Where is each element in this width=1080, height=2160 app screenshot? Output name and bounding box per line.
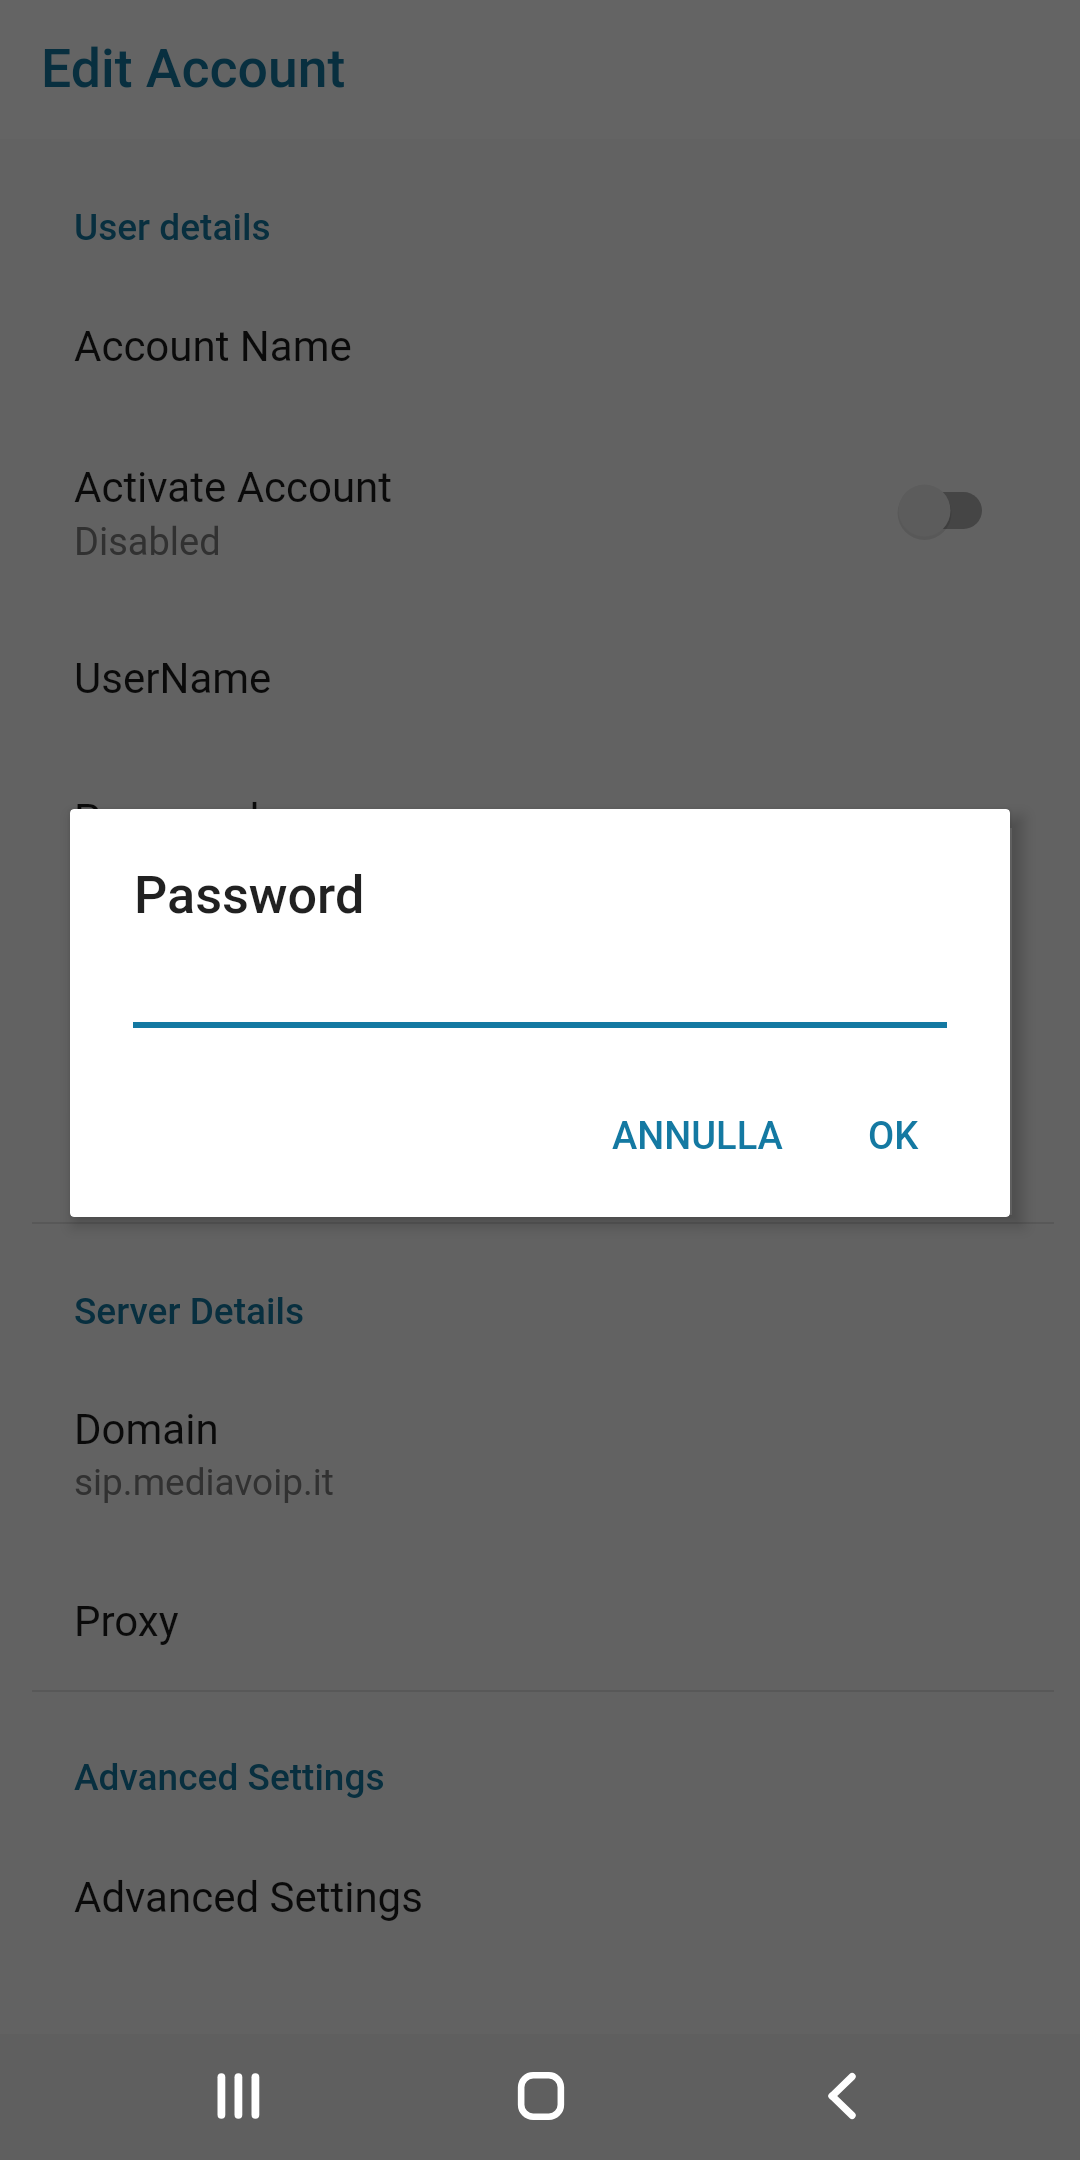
button[interactable]: Activate Account bbox=[0, 440, 1080, 610]
button[interactable]: Back bbox=[763, 2028, 923, 2160]
button[interactable]: Recent apps bbox=[158, 2028, 318, 2160]
staticText: sip.mediavoip.it bbox=[74, 1461, 334, 1504]
staticText: Password bbox=[74, 795, 260, 844]
staticText: Disabled bbox=[74, 520, 221, 565]
staticText: Domain bbox=[74, 1405, 219, 1454]
staticText: ANNULLA bbox=[612, 1114, 783, 1159]
staticText: Advanced Settings bbox=[74, 1873, 423, 1922]
button[interactable]: UserName bbox=[0, 630, 1080, 750]
button[interactable]: Edit Account bbox=[0, 0, 1080, 139]
button[interactable]: Password bbox=[0, 770, 1080, 890]
staticText: User details bbox=[74, 206, 271, 249]
staticText: Proxy bbox=[74, 1597, 179, 1646]
button[interactable]: Home bbox=[461, 2028, 621, 2160]
staticText: Password bbox=[134, 865, 365, 926]
button[interactable]: Account Name bbox=[0, 300, 1080, 420]
button[interactable]: ANNULLA bbox=[590, 1087, 844, 1177]
button[interactable]: Password field bbox=[133, 942, 947, 1028]
button[interactable]: OK bbox=[845, 1087, 975, 1177]
staticText: UserName bbox=[74, 654, 272, 703]
staticText: OK bbox=[868, 1114, 919, 1159]
staticText: Activate Account bbox=[74, 463, 393, 512]
staticText: Account Name bbox=[74, 322, 352, 371]
button[interactable]: Domain bbox=[0, 1385, 1080, 1555]
button[interactable]: Advanced Settings bbox=[0, 1855, 1080, 1975]
staticText: Edit Account bbox=[41, 37, 346, 100]
button[interactable]: Activate account toggle, off bbox=[898, 482, 998, 542]
staticText: Advanced Settings bbox=[74, 1756, 385, 1799]
staticText: Server Details bbox=[74, 1290, 305, 1333]
button[interactable]: Proxy bbox=[0, 1575, 1080, 1695]
